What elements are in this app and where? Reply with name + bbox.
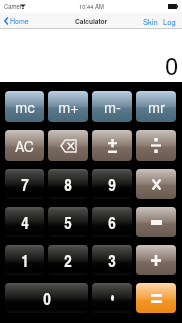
staticText: m+ [58, 96, 79, 117]
staticText: Log [163, 16, 176, 27]
button[interactable]: 0 [5, 283, 88, 313]
staticText: Home [10, 16, 29, 26]
button[interactable]: Plus [136, 245, 176, 275]
button[interactable]: 8 [48, 169, 88, 199]
button[interactable]: m- [92, 91, 132, 122]
staticText: mc [15, 96, 35, 117]
button[interactable]: 3 [92, 245, 132, 275]
button[interactable]: Skin [141, 13, 160, 29]
button[interactable]: 6 [92, 207, 132, 237]
staticText: 3 [108, 249, 116, 272]
button[interactable]: mc [5, 91, 44, 122]
button[interactable]: 5 [48, 207, 88, 237]
staticText: 5 [64, 211, 72, 234]
button[interactable]: m+ [48, 91, 88, 122]
button[interactable]: Log [161, 13, 178, 29]
staticText: 4 [21, 211, 29, 234]
button[interactable]: Equals [136, 283, 176, 313]
button[interactable]: AC [5, 130, 44, 161]
staticText: mr [148, 96, 165, 117]
button[interactable]: Home [0, 13, 34, 29]
staticText: 9 [108, 173, 116, 196]
staticText: 0 [43, 287, 51, 310]
button[interactable]: 2 [48, 245, 88, 275]
staticText: 10:44 AM [79, 2, 104, 10]
button[interactable]: Decimal point [92, 283, 132, 313]
staticText: 6 [108, 211, 116, 234]
button[interactable]: mr [136, 91, 176, 122]
button[interactable]: Plus minus [92, 130, 132, 161]
button[interactable]: 7 [5, 169, 44, 199]
staticText: Calculator [75, 17, 108, 26]
button[interactable]: Divide [136, 130, 176, 161]
staticText: 7 [21, 173, 29, 196]
staticText: 8 [64, 173, 72, 196]
staticText: 0 [165, 47, 179, 81]
staticText: AC [15, 136, 34, 156]
button[interactable]: Multiply [136, 169, 176, 199]
button[interactable]: 1 [5, 245, 44, 275]
staticText: m- [104, 96, 121, 117]
button[interactable]: Minus [136, 207, 176, 237]
staticText: 2 [64, 249, 72, 272]
staticText: Carrier [4, 2, 22, 10]
button[interactable]: Backspace [48, 130, 88, 161]
staticText: 1 [21, 249, 29, 272]
staticText: Skin [143, 16, 158, 27]
button[interactable]: 9 [92, 169, 132, 199]
button[interactable]: 4 [5, 207, 44, 237]
